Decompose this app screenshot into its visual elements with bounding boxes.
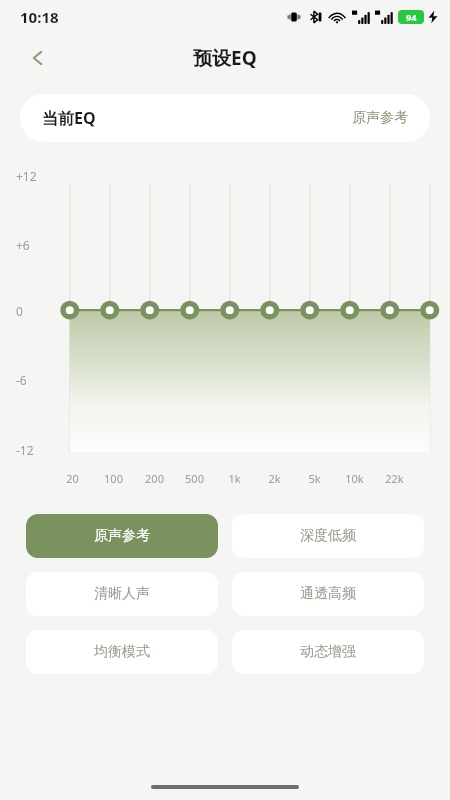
staticText: 200 xyxy=(145,471,164,486)
staticText: 20 xyxy=(66,471,79,486)
button[interactable]: 当前EQ xyxy=(20,94,430,142)
staticText: -12 xyxy=(16,442,34,458)
staticText: 动态增强 xyxy=(300,643,356,661)
staticText: 1k xyxy=(228,471,241,486)
staticText: 原声参考 xyxy=(94,527,150,545)
staticText: 当前EQ xyxy=(42,107,96,129)
staticText: 预设EQ xyxy=(193,45,257,71)
staticText: 94 xyxy=(406,11,417,23)
staticText: 500 xyxy=(185,471,204,486)
staticText: 清晰人声 xyxy=(94,585,150,603)
button[interactable]: 通透高频 xyxy=(232,572,424,616)
staticText: 2k xyxy=(268,471,281,486)
staticText: 100 xyxy=(104,471,123,486)
staticText: 通透高频 xyxy=(300,585,356,603)
staticText: +6 xyxy=(16,237,30,253)
button[interactable]: Back xyxy=(18,38,58,78)
staticText: +12 xyxy=(16,168,37,184)
staticText: 10:18 xyxy=(20,7,59,27)
staticText: 深度低频 xyxy=(300,527,356,545)
button[interactable]: 清晰人声 xyxy=(26,572,218,616)
button[interactable]: 均衡模式 xyxy=(26,630,218,674)
staticText: -6 xyxy=(16,372,27,388)
button[interactable]: 动态增强 xyxy=(232,630,424,674)
button[interactable]: 原声参考 xyxy=(26,514,218,558)
staticText: 原声参考 xyxy=(352,109,408,127)
staticText: 10k xyxy=(345,471,364,486)
staticText: 均衡模式 xyxy=(94,643,150,661)
staticText: 0 xyxy=(16,303,23,319)
button[interactable]: 深度低频 xyxy=(232,514,424,558)
staticText: 22k xyxy=(385,471,404,486)
staticText: 5k xyxy=(308,471,321,486)
